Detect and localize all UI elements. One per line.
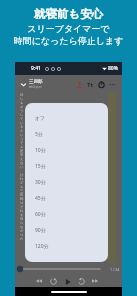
staticText: え (20, 157, 24, 161)
staticText: た (20, 237, 24, 241)
staticText: 90分 (35, 227, 46, 234)
button[interactable]: 90分 (25, 222, 108, 238)
staticText: ら (20, 221, 24, 225)
staticText: 郎 (20, 197, 24, 201)
button[interactable]: More options (107, 79, 118, 90)
button[interactable]: Forward 30 seconds (76, 276, 86, 286)
staticText: 知 (20, 217, 24, 221)
button[interactable]: 60分 (25, 206, 108, 222)
staticText: い (20, 133, 24, 137)
staticText: っ (20, 137, 24, 141)
staticText: 夏目漱石 (29, 85, 42, 89)
button[interactable]: Play (62, 276, 73, 287)
staticText: Tt (87, 81, 94, 89)
staticText: を (20, 213, 24, 217)
staticText: ど (20, 181, 24, 185)
button[interactable]: Next (90, 276, 100, 286)
staticText: と (20, 129, 24, 133)
staticText: て (20, 117, 24, 121)
staticText: し (20, 97, 24, 101)
staticText: も (20, 185, 24, 189)
staticText: い (20, 121, 24, 125)
staticText: オフ (35, 115, 46, 121)
staticText: れ (20, 209, 24, 213)
button[interactable]: Collapse (18, 79, 28, 89)
staticText: け (20, 173, 24, 177)
staticText: 。 (20, 169, 24, 173)
staticText: 就寝前も安心 (0, 7, 137, 21)
staticText: な (20, 225, 24, 229)
staticText: 120分 (35, 243, 49, 250)
staticText: 日 (20, 93, 24, 97)
staticText: 三 (20, 189, 24, 193)
staticText: は (20, 201, 24, 205)
staticText: 支 (20, 153, 24, 157)
staticText: 三四郎 (29, 79, 43, 85)
staticText: 差 (20, 149, 24, 153)
staticText: 15分 (35, 163, 46, 170)
staticText: スリープタイマーで 時間になったら停止します (0, 23, 137, 47)
button[interactable]: 120分 (25, 238, 108, 254)
staticText: も (20, 101, 24, 105)
button[interactable]: オフ (25, 110, 108, 126)
staticText: つ (20, 233, 24, 237)
staticText: 10分 (35, 147, 46, 154)
button[interactable]: Sleep timer (96, 79, 107, 90)
staticText: さ (20, 105, 24, 109)
staticText: 5分 (35, 131, 43, 138)
staticText: る (20, 125, 24, 129)
button[interactable]: Text settings (85, 79, 96, 90)
staticText: か (20, 229, 24, 233)
staticText: い (20, 165, 24, 169)
staticText: 9:41 (31, 65, 41, 72)
button[interactable]: 30分 (25, 174, 108, 190)
button[interactable]: 5分 (25, 126, 108, 142)
button[interactable]: 15分 (25, 158, 108, 174)
staticText: も (20, 145, 24, 149)
staticText: し (20, 113, 24, 117)
button[interactable]: Rewind 30 seconds (48, 276, 58, 286)
staticText: そ (20, 205, 24, 209)
staticText: 四 (20, 193, 24, 197)
staticText: れ (20, 177, 24, 181)
button[interactable]: Download (74, 79, 85, 90)
staticText: な (20, 161, 24, 165)
button[interactable]: Previous (34, 276, 44, 286)
staticText: 45分 (35, 195, 46, 202)
staticText: て (20, 141, 24, 145)
button[interactable]: 45分 (25, 190, 108, 206)
staticText: 30分 (35, 179, 46, 186)
button[interactable]: 10分 (25, 142, 108, 158)
staticText: 80% (108, 65, 118, 72)
staticText: 1 / 34 (110, 267, 120, 272)
staticText: 60分 (35, 211, 46, 218)
staticText: う (20, 109, 24, 113)
